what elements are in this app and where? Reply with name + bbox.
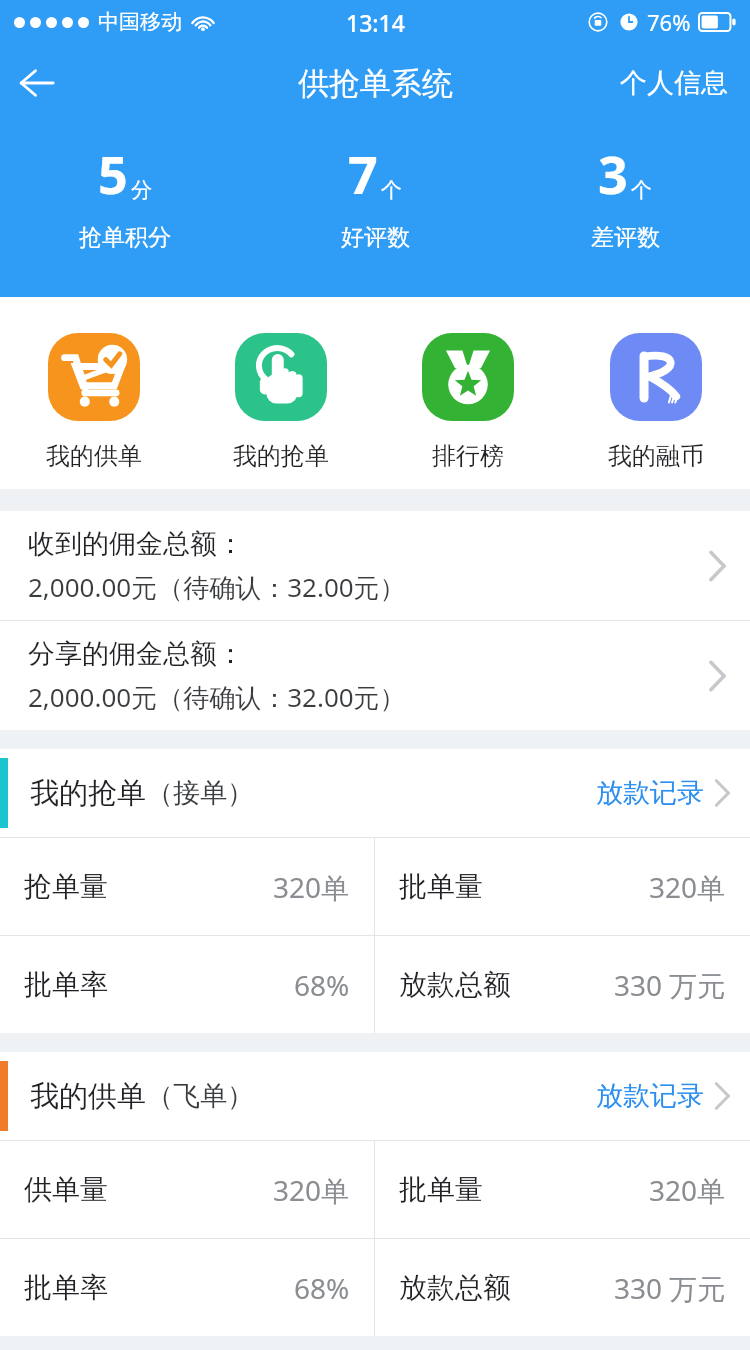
staticText: 13:14 <box>346 7 405 38</box>
button[interactable]: 放款总额 <box>375 936 750 1033</box>
button[interactable]: 排行榜 <box>374 297 562 489</box>
staticText: 2,000.00元（待确认：32.00元） <box>28 679 406 715</box>
button[interactable]: 批单量 <box>375 1141 750 1238</box>
button[interactable]: 我的抢单 <box>187 297 374 489</box>
staticText: 320单 <box>273 868 350 906</box>
button[interactable]: 批单率 <box>0 1239 374 1336</box>
staticText: 5 <box>98 138 128 209</box>
staticText: 320单 <box>273 1171 350 1209</box>
staticText: 批单量 <box>399 869 483 904</box>
staticText: 76% <box>647 7 691 37</box>
button[interactable]: 返回 <box>0 45 76 121</box>
staticText: 抢单量 <box>24 869 108 904</box>
button[interactable]: 7 <box>250 138 500 252</box>
staticText: 我的融币 <box>608 441 704 471</box>
staticText: 我的抢单 <box>30 775 146 812</box>
staticText: 中国移动 <box>98 9 182 35</box>
staticText: 330 万元 <box>614 1269 726 1307</box>
staticText: 68% <box>294 966 350 1004</box>
staticText: 批单率 <box>24 1270 108 1305</box>
button[interactable]: 收到的佣金总额： <box>0 511 750 620</box>
staticText: 放款记录 <box>596 776 704 810</box>
staticText: 分 <box>131 177 152 203</box>
staticText: 抢单积分 <box>79 223 171 252</box>
button[interactable]: 放款总额 <box>375 1239 750 1336</box>
button[interactable]: 供单量 <box>0 1141 374 1238</box>
staticText: 好评数 <box>341 223 410 252</box>
staticText: 2,000.00元（待确认：32.00元） <box>28 569 406 605</box>
button[interactable]: 我的融币 <box>562 297 750 489</box>
staticText: 320单 <box>649 1171 726 1209</box>
button[interactable]: 3 <box>500 138 750 252</box>
staticText: 放款记录 <box>596 1079 704 1113</box>
staticText: 个 <box>381 177 402 203</box>
staticText: 批单量 <box>399 1172 483 1207</box>
staticText: 320单 <box>649 868 726 906</box>
staticText: 供抢单系统 <box>298 64 453 103</box>
button[interactable]: 5 <box>0 138 250 252</box>
staticText: 批单率 <box>24 967 108 1002</box>
staticText: 我的供单 <box>46 441 142 471</box>
staticText: 个 <box>631 177 652 203</box>
staticText: 排行榜 <box>432 441 504 471</box>
button[interactable]: 批单量 <box>375 838 750 935</box>
staticText: 差评数 <box>591 223 660 252</box>
button[interactable]: 个人信息 <box>598 54 750 112</box>
button[interactable]: 抢单量 <box>0 838 374 935</box>
staticText: （飞单） <box>146 1079 254 1113</box>
staticText: 68% <box>294 1269 350 1307</box>
button[interactable]: 放款记录 <box>578 1063 750 1129</box>
staticText: 3 <box>598 138 628 209</box>
button[interactable]: 分享的佣金总额： <box>0 621 750 730</box>
staticText: 分享的佣金总额： <box>28 637 244 671</box>
staticText: （接单） <box>146 776 254 810</box>
button[interactable]: 批单率 <box>0 936 374 1033</box>
staticText: 我的抢单 <box>233 441 329 471</box>
staticText: 330 万元 <box>614 966 726 1004</box>
staticText: 放款总额 <box>399 1270 511 1305</box>
button[interactable]: 我的供单 <box>0 297 187 489</box>
staticText: 我的供单 <box>30 1078 146 1115</box>
staticText: 7 <box>348 138 378 209</box>
staticText: 放款总额 <box>399 967 511 1002</box>
button[interactable]: 放款记录 <box>578 760 750 826</box>
staticText: 个人信息 <box>620 66 728 100</box>
staticText: 供单量 <box>24 1172 108 1207</box>
staticText: 收到的佣金总额： <box>28 527 244 561</box>
